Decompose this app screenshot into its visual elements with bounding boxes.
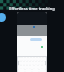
button[interactable] [19,61,21,65]
button[interactable] [39,61,42,65]
button[interactable] [42,61,45,65]
button[interactable] [28,57,31,61]
button[interactable] [24,65,27,69]
button[interactable] [22,57,25,61]
button[interactable] [33,61,36,65]
button[interactable] [40,57,43,61]
button[interactable] [31,57,34,61]
button[interactable] [27,65,30,69]
button[interactable] [20,57,22,61]
button[interactable] [21,61,24,65]
button[interactable] [24,61,27,65]
button[interactable] [18,65,21,69]
button[interactable] [43,57,46,61]
button[interactable] [37,57,40,61]
button[interactable] [27,61,30,65]
button[interactable] [36,61,39,65]
staticText: Effortless time tracking [0,6,64,11]
button[interactable] [30,61,33,65]
button[interactable] [25,57,28,61]
button[interactable] [18,57,20,61]
button[interactable] [34,57,37,61]
button[interactable] [21,65,24,69]
